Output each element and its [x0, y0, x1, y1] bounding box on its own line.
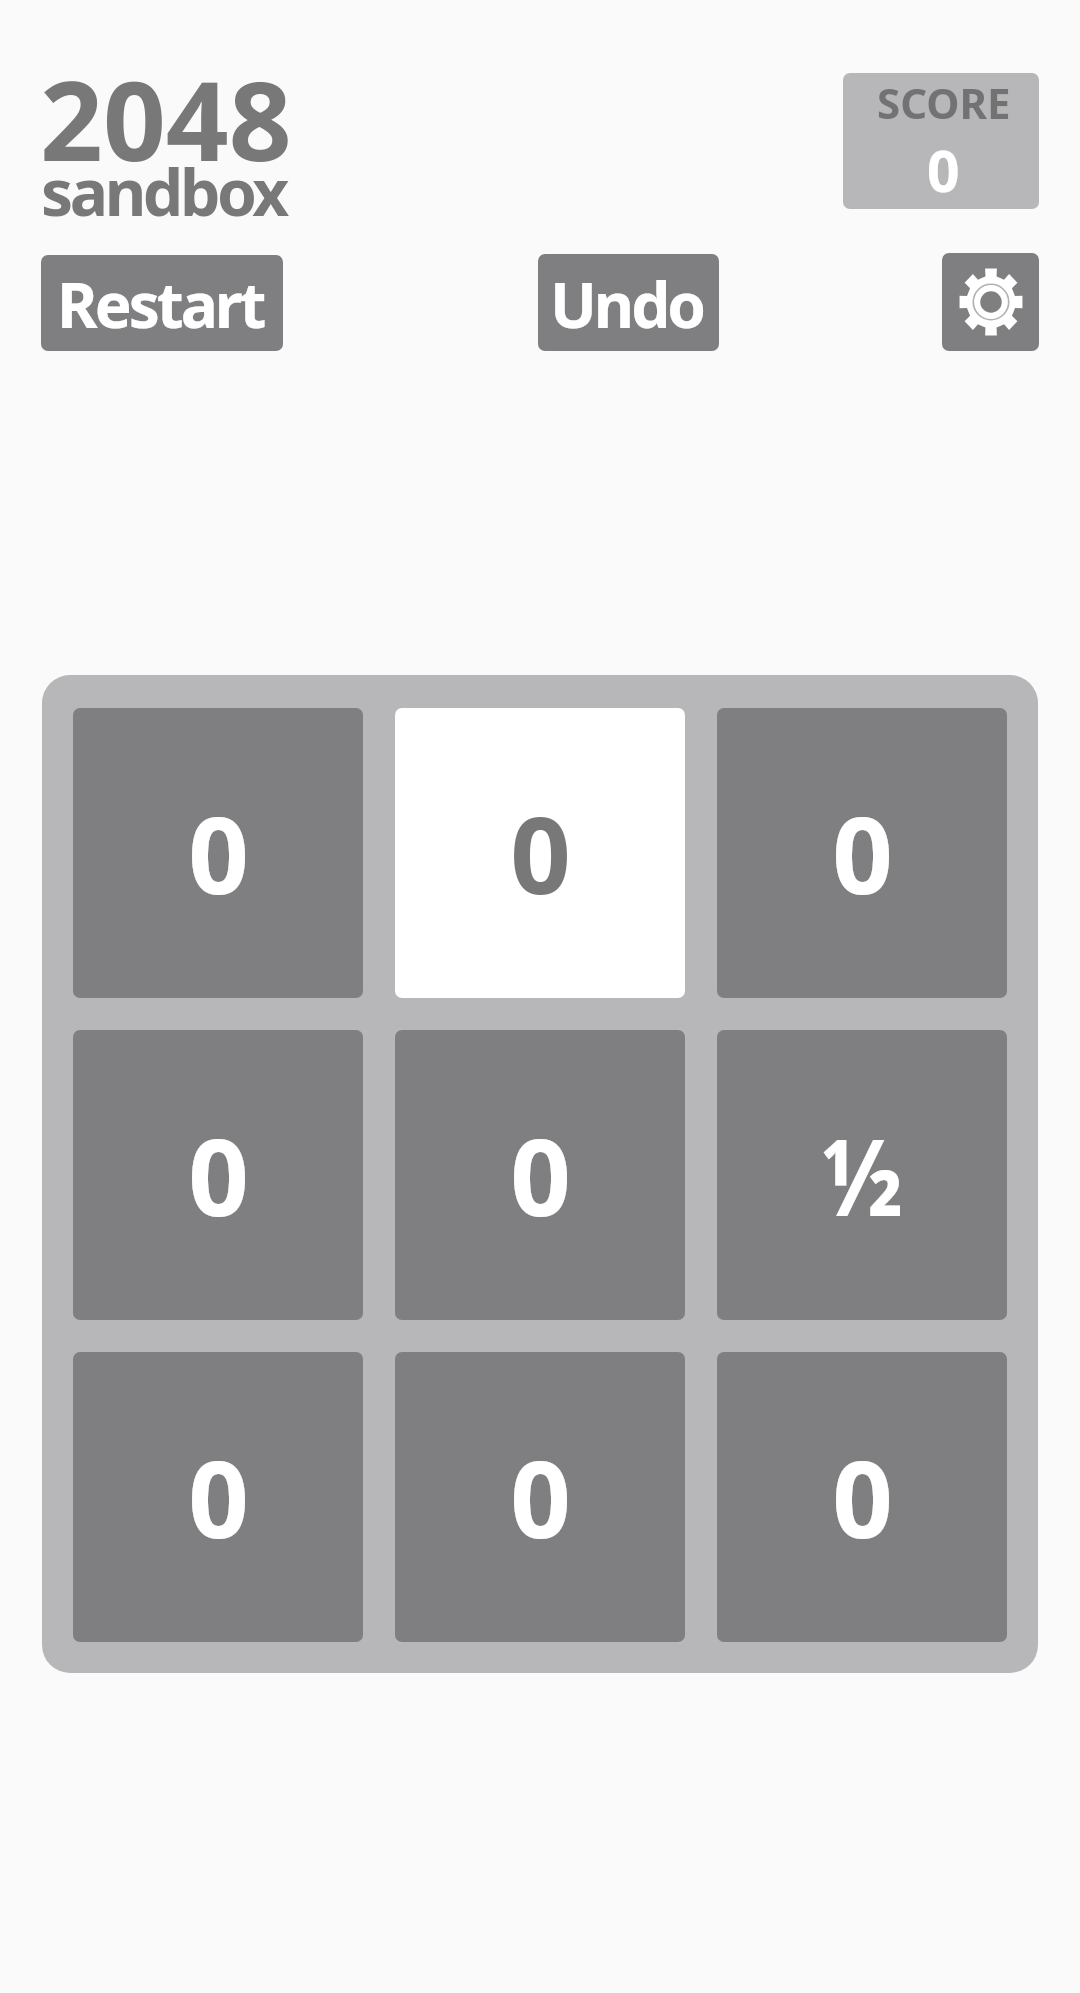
button[interactable]: 0	[395, 1030, 685, 1320]
staticText: 0	[927, 131, 960, 209]
staticText: sandbox	[41, 148, 286, 235]
staticText: 0	[510, 1425, 571, 1569]
staticText: 0	[832, 781, 893, 925]
button[interactable]: 0	[717, 1352, 1007, 1642]
staticText: 0	[188, 781, 249, 925]
button[interactable]: SCORE	[843, 73, 1039, 209]
staticText: 0	[510, 781, 571, 925]
staticText: Restart	[57, 262, 264, 346]
staticText: Undo	[550, 262, 704, 346]
staticText: 2048	[40, 43, 292, 193]
button[interactable]: 0	[717, 708, 1007, 998]
staticText: SCORE	[877, 74, 1011, 131]
staticText: 0	[188, 1103, 249, 1247]
button[interactable]: 0	[395, 708, 685, 998]
staticText: 0	[510, 1103, 571, 1247]
button[interactable]: ½	[717, 1030, 1007, 1320]
button[interactable]: Undo	[538, 254, 719, 351]
button[interactable]: 0	[395, 1352, 685, 1642]
button[interactable]: Settings	[942, 253, 1039, 351]
staticText: 0	[832, 1425, 893, 1569]
button[interactable]: 0	[73, 708, 363, 998]
button[interactable]: 0	[73, 1352, 363, 1642]
button[interactable]: 0	[73, 1030, 363, 1320]
button[interactable]: Restart	[41, 255, 283, 351]
staticText: ½	[822, 1103, 903, 1247]
staticText: 0	[188, 1425, 249, 1569]
